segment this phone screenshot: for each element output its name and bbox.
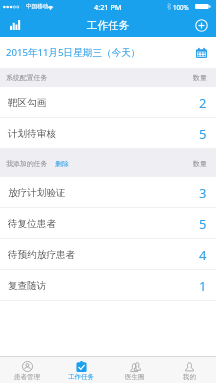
staticText: 1 xyxy=(199,277,207,295)
button[interactable]: 复查随访 xyxy=(0,270,216,301)
staticText: 工作任务 xyxy=(68,373,94,381)
staticText: 2015年11月5日星期三（今天） xyxy=(6,46,141,59)
staticText: 4:21 PM xyxy=(94,2,122,12)
staticText: 数量 xyxy=(193,73,207,82)
staticText: 100% xyxy=(173,3,189,11)
button[interactable]: 患者管理 xyxy=(0,357,54,383)
button[interactable]: 我的 xyxy=(162,357,216,383)
staticText: 中国移动 xyxy=(26,3,49,10)
other: Pick date xyxy=(196,48,207,58)
button[interactable]: 计划待审核 xyxy=(0,118,216,149)
button[interactable]: 工作任务 xyxy=(54,357,108,383)
button[interactable]: 医生圈 xyxy=(108,357,162,383)
staticText: 患者管理 xyxy=(14,373,40,381)
staticText: 复查随访 xyxy=(8,280,47,292)
staticText: 4 xyxy=(199,246,207,264)
staticText: 数量 xyxy=(193,159,207,168)
button[interactable]: 待复位患者 xyxy=(0,208,216,239)
staticText: 删除 xyxy=(55,159,69,168)
button[interactable]: 待预约放疗患者 xyxy=(0,239,216,270)
staticText: 我的 xyxy=(183,373,196,381)
button[interactable]: Add task xyxy=(191,15,211,35)
button[interactable]: 靶区勾画 xyxy=(0,87,216,118)
staticText: 计划待审核 xyxy=(8,128,56,140)
staticText: 工作任务 xyxy=(87,19,129,32)
staticText: 待复位患者 xyxy=(8,218,56,230)
staticText: 靶区勾画 xyxy=(8,97,47,109)
button[interactable]: 删除 xyxy=(55,159,69,168)
button[interactable]: Statistics xyxy=(5,15,25,35)
staticText: 放疗计划验证 xyxy=(8,187,66,199)
staticText: 2 xyxy=(199,94,207,112)
staticText: 5 xyxy=(199,125,207,143)
staticText: 待预约放疗患者 xyxy=(8,249,76,261)
staticText: 系统配置任务 xyxy=(6,73,48,82)
staticText: 医生圈 xyxy=(125,373,145,381)
button[interactable]: 放疗计划验证 xyxy=(0,177,216,208)
staticText: 5 xyxy=(199,215,207,233)
button[interactable]: 2015年11月5日星期三（今天） xyxy=(0,37,216,68)
staticText: 我添加的任务 xyxy=(6,159,48,168)
staticText: 3 xyxy=(199,184,207,202)
